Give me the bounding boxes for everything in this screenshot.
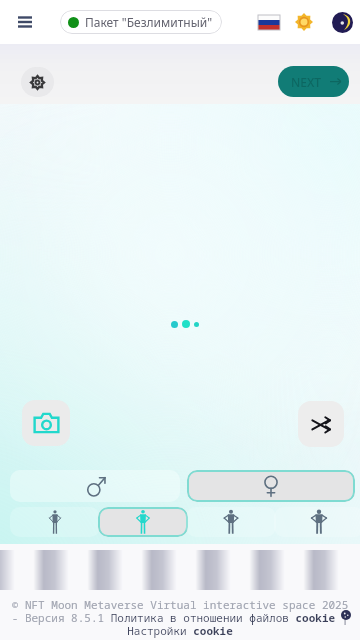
button[interactable]: Preview 4	[141, 550, 177, 590]
button[interactable]: Female	[187, 470, 355, 502]
button[interactable]: Shuffle	[298, 401, 344, 447]
button[interactable]: Language	[254, 8, 284, 36]
staticText: © NFT Moon Metaverse Virtual interactive…	[0, 597, 360, 638]
button[interactable]: Camera	[22, 400, 70, 446]
button[interactable]: Dark theme	[327, 7, 357, 37]
button[interactable]: Preview 5	[195, 550, 231, 590]
button[interactable]: Body type 3	[186, 507, 276, 537]
button[interactable]: Preview 1	[0, 550, 15, 590]
button[interactable]: Settings	[21, 67, 54, 97]
button[interactable]: Menu	[9, 6, 41, 38]
button[interactable]: Male	[10, 470, 180, 502]
button[interactable]: Preview 3	[87, 550, 123, 590]
staticText: Пакет "Безлимитный"	[85, 14, 213, 30]
button[interactable]: Body type 2	[98, 507, 188, 537]
button[interactable]: Light theme	[289, 7, 319, 37]
button[interactable]: Пакет "Безлимитный"	[60, 10, 222, 34]
button[interactable]: Body type 1	[10, 507, 100, 537]
button[interactable]: Preview 2	[33, 550, 69, 590]
button[interactable]: NEXT	[278, 66, 349, 97]
button[interactable]: Preview 6	[249, 550, 285, 590]
button[interactable]: Preview 7	[303, 550, 339, 590]
button[interactable]: Body type 4	[274, 507, 360, 537]
staticText: NEXT	[291, 74, 322, 90]
